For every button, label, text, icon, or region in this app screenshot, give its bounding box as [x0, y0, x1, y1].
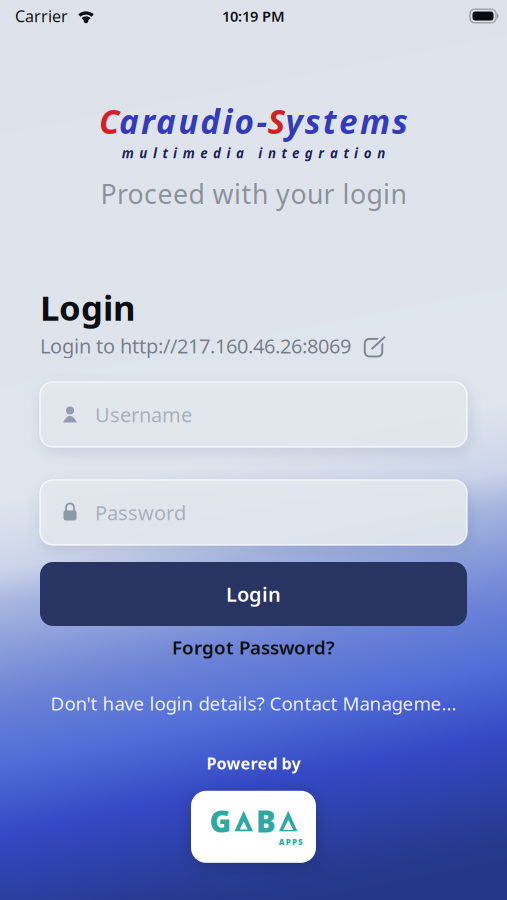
staticText: Login to http://217.160.46.26:8069 [40, 332, 351, 359]
staticText: ystems [286, 99, 408, 143]
button[interactable]: Login [40, 562, 467, 626]
staticText: APPS [279, 836, 303, 847]
staticText: B [256, 801, 276, 840]
staticText: C [99, 99, 119, 143]
staticText: S [268, 99, 286, 143]
staticText: 10:19 PM [222, 6, 285, 26]
staticText: m u l t i m e d i a i n t e g r a t i o … [122, 144, 385, 162]
staticText: Powered by [206, 753, 300, 774]
staticText: G [209, 801, 231, 840]
staticText: Carrier [15, 5, 68, 27]
staticText: Proceed with your login [100, 176, 406, 211]
button[interactable]: Password [40, 480, 467, 545]
button[interactable]: Don't have login details? Contact Manage… [50, 691, 456, 716]
staticText: Password [95, 499, 186, 526]
staticText: Login [226, 581, 281, 607]
staticText: araudio- [119, 99, 268, 143]
staticText: Login [40, 284, 136, 330]
staticText: Username [95, 401, 192, 428]
button[interactable]: Username [40, 382, 467, 447]
button[interactable]: Edit server URL [365, 335, 386, 357]
button[interactable]: Forgot Password? [172, 635, 335, 660]
staticText: Forgot Password? [172, 635, 335, 660]
staticText: Don't have login details? Contact Manage… [50, 691, 456, 716]
button[interactable]: GABA Apps [191, 791, 316, 863]
